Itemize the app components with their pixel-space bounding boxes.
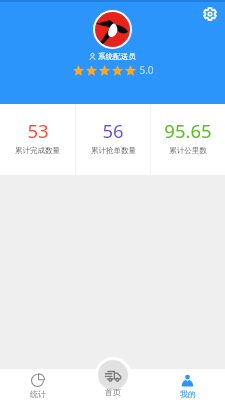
staticText: 系统配送员: [98, 52, 136, 61]
button[interactable]: 53: [0, 104, 75, 175]
staticText: 56: [102, 118, 124, 143]
staticText: 累计公里数: [169, 146, 207, 155]
button[interactable]: 我的: [150, 369, 225, 400]
button[interactable]: Home: [98, 360, 128, 390]
button[interactable]: 95.65: [151, 104, 225, 175]
button[interactable]: Settings: [198, 2, 222, 26]
staticText: 统计: [30, 389, 46, 399]
button[interactable]: 统计: [0, 369, 75, 400]
staticText: 首页: [105, 387, 121, 397]
staticText: 53: [27, 118, 49, 143]
button[interactable]: 56: [76, 104, 150, 175]
staticText: 我的: [180, 389, 196, 399]
staticText: 5.0: [139, 63, 154, 77]
staticText: 95.65: [164, 118, 212, 143]
staticText: 累计抢单数量: [91, 146, 136, 155]
button[interactable]: Avatar: [95, 12, 130, 47]
staticText: 累计完成数量: [15, 146, 60, 155]
